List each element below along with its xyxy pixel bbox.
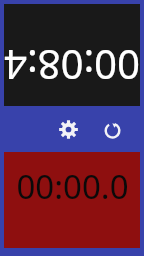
button[interactable]: 00:00.0 <box>4 152 140 248</box>
button[interactable]: Reset <box>97 114 127 144</box>
staticText: 00:08:4 <box>4 39 140 93</box>
button[interactable]: Settings <box>53 114 83 144</box>
button[interactable]: 00:08:4 <box>4 4 140 106</box>
staticText: 00:00.0 <box>16 164 129 209</box>
